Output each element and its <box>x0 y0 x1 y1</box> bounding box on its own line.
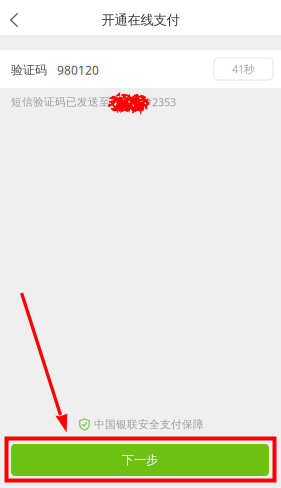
staticText: 开通在线支付 <box>101 12 179 28</box>
staticText: 186****2353 <box>110 95 176 109</box>
staticText: 验证码 <box>11 63 47 77</box>
staticText: 980120 <box>57 62 99 78</box>
button[interactable]: Back <box>0 0 40 35</box>
staticText: 下一步 <box>122 453 158 467</box>
staticText: 中国银联安全支付保障 <box>94 418 204 431</box>
staticText: 41秒 <box>232 62 255 76</box>
staticText: 短信验证码已发送至 <box>11 95 110 108</box>
button[interactable]: 41秒 <box>214 58 273 80</box>
button[interactable]: 下一步 <box>11 444 269 476</box>
